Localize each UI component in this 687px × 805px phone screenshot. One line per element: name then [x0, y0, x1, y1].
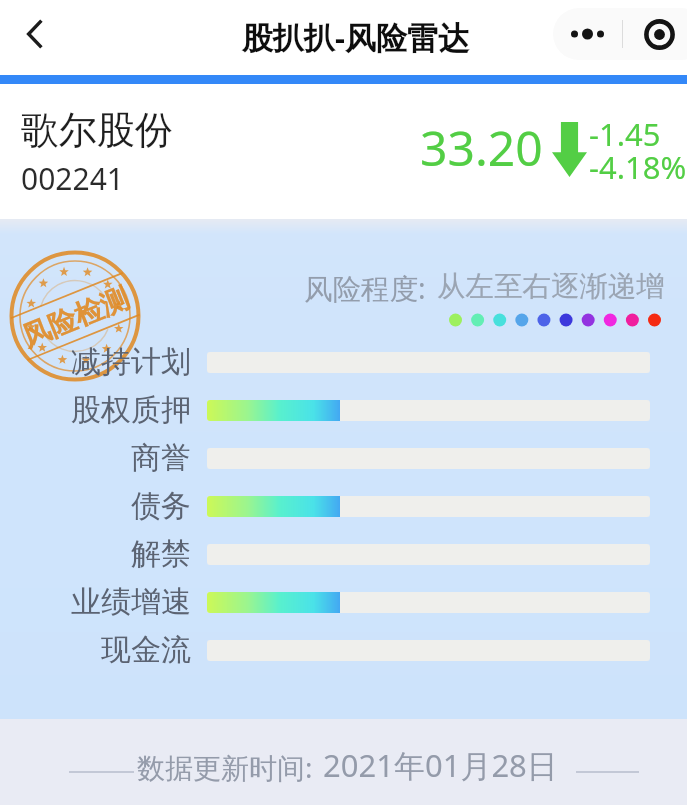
- staticText: 股权质押: [71, 391, 191, 429]
- staticText: 解禁: [131, 535, 191, 573]
- staticText: 现金流: [101, 631, 191, 669]
- button[interactable]: Close: [623, 8, 687, 60]
- staticText: 债务: [131, 487, 191, 525]
- staticText: 从左至右逐渐递增: [437, 269, 665, 305]
- button[interactable]: Back: [11, 6, 59, 62]
- staticText: -1.45: [589, 113, 661, 155]
- staticText: 歌尔股份: [21, 106, 173, 154]
- staticText: 业绩增速: [71, 583, 191, 621]
- staticText: 风险程度:: [304, 269, 426, 308]
- button[interactable]: More options: [553, 8, 622, 60]
- staticText: -4.18%: [589, 146, 687, 188]
- staticText: 数据更新时间:: [137, 748, 313, 786]
- staticText: 33.20: [420, 115, 543, 180]
- staticText: 股扒扒-风险雷达: [242, 16, 469, 58]
- staticText: 商誉: [131, 439, 191, 477]
- staticText: 2021年01月28日: [323, 744, 558, 786]
- staticText: 002241: [21, 158, 124, 199]
- staticText: 风险检测: [17, 280, 134, 355]
- staticText: 减持计划: [71, 343, 191, 381]
